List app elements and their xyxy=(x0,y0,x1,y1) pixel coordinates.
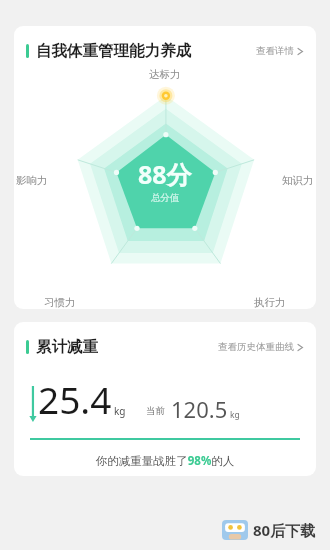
staticText: 影响力 xyxy=(16,174,48,187)
staticText: 当前 xyxy=(146,405,165,417)
staticText: 执行力 xyxy=(254,296,286,309)
other: Logo xyxy=(222,520,248,540)
staticText: 25.4 xyxy=(38,374,112,424)
staticText: 知识力 xyxy=(282,174,314,187)
staticText: 查看历史体重曲线 xyxy=(218,341,294,353)
button[interactable]: 查看历史体重曲线 xyxy=(216,337,306,357)
staticText: 总分值 xyxy=(151,192,180,204)
staticText: kg xyxy=(230,409,240,421)
button[interactable]: 查看详情 xyxy=(254,41,306,61)
staticText: 88分 xyxy=(138,157,192,191)
staticText: 习惯力 xyxy=(44,296,76,309)
staticText: 80后下载 xyxy=(253,520,316,540)
staticText: 120.5 xyxy=(171,394,228,424)
staticText: 达标力 xyxy=(149,68,181,81)
staticText: 你的减重量战胜了98%的人 xyxy=(14,453,316,469)
staticText: 自我体重管理能力养成 xyxy=(36,41,191,61)
button[interactable]: Logo xyxy=(218,516,320,544)
staticText: kg xyxy=(114,404,126,418)
staticText: 累计减重 xyxy=(36,337,98,357)
staticText: 查看详情 xyxy=(256,45,294,57)
